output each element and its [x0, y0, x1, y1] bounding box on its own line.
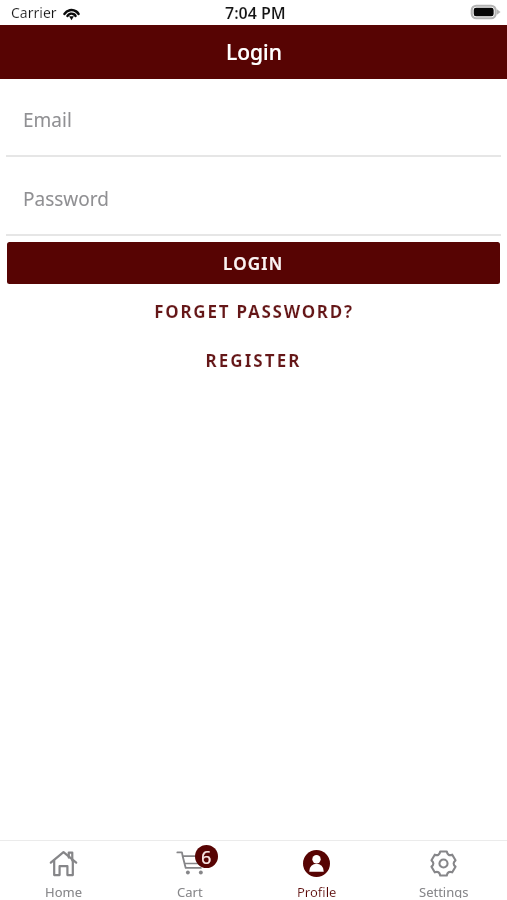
staticText: Password	[23, 186, 109, 212]
staticText: 6	[201, 845, 212, 868]
staticText: REGISTER	[205, 349, 302, 372]
button[interactable]: Settings	[380, 841, 507, 900]
button[interactable]: Profile	[253, 841, 380, 900]
staticText: Cart	[177, 883, 203, 898]
staticText: Login	[226, 38, 282, 67]
button[interactable]: REGISTER	[0, 346, 507, 374]
staticText: LOGIN	[223, 252, 284, 275]
button[interactable]: Home	[0, 841, 126, 900]
staticText: Settings	[419, 883, 469, 898]
staticText: Home	[45, 883, 82, 898]
button[interactable]: FORGET PASSWORD?	[0, 297, 507, 325]
staticText: Carrier	[11, 3, 57, 22]
staticText: FORGET PASSWORD?	[154, 300, 354, 323]
button[interactable]: Password input field	[0, 173, 507, 236]
button[interactable]: 6	[126, 841, 253, 900]
button[interactable]: Email input field	[0, 94, 507, 157]
staticText: Email	[23, 107, 72, 133]
button[interactable]: LOGIN	[7, 242, 500, 284]
staticText: 7:04 PM	[225, 2, 286, 24]
staticText: Profile	[297, 883, 337, 898]
